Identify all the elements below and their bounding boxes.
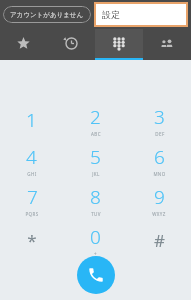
staticText: 0 — [90, 224, 101, 250]
button[interactable]: Favorites — [0, 29, 47, 60]
button[interactable]: 5 — [63, 140, 127, 180]
button[interactable]: 3 — [127, 100, 191, 140]
staticText: 1 — [26, 107, 37, 133]
staticText: 2 — [90, 104, 101, 130]
button[interactable]: 8 — [63, 180, 127, 220]
staticText: 設定 — [102, 9, 120, 20]
button[interactable]: 6 — [127, 140, 191, 180]
staticText: WXYZ — [152, 211, 166, 217]
staticText: 6 — [154, 144, 165, 170]
staticText: 4 — [26, 144, 37, 170]
staticText: 8 — [90, 184, 101, 210]
staticText: DEF — [155, 131, 165, 137]
button[interactable]: 7 — [0, 180, 63, 220]
staticText: PQRS — [25, 211, 39, 217]
staticText: JKL — [92, 171, 100, 177]
staticText: 3 — [154, 104, 165, 130]
button[interactable]: 4 — [0, 140, 63, 180]
button[interactable]: 1 — [0, 100, 63, 140]
button[interactable]: 2 — [63, 100, 127, 140]
staticText: # — [154, 229, 165, 252]
button[interactable]: 0 — [63, 220, 127, 260]
staticText: * — [27, 229, 37, 252]
button[interactable]: # — [127, 220, 191, 260]
staticText: GHI — [27, 171, 37, 177]
staticText: MNO — [153, 171, 166, 177]
staticText: アカウントがありません — [10, 11, 84, 19]
staticText: 5 — [90, 144, 101, 170]
staticText: 9 — [154, 184, 165, 210]
staticText: ABC — [91, 131, 101, 137]
button[interactable]: Call history — [47, 29, 95, 60]
staticText: + — [94, 251, 97, 257]
button[interactable]: アカウントがありません — [3, 6, 91, 23]
staticText: TUV — [91, 211, 101, 217]
button[interactable]: Call — [77, 256, 115, 294]
staticText: 7 — [27, 184, 38, 210]
button[interactable]: * — [0, 220, 63, 260]
button[interactable]: Contacts — [143, 29, 191, 60]
button[interactable]: 設定 — [94, 2, 188, 27]
button[interactable]: 9 — [127, 180, 191, 220]
button[interactable]: Dialpad — [95, 29, 143, 60]
